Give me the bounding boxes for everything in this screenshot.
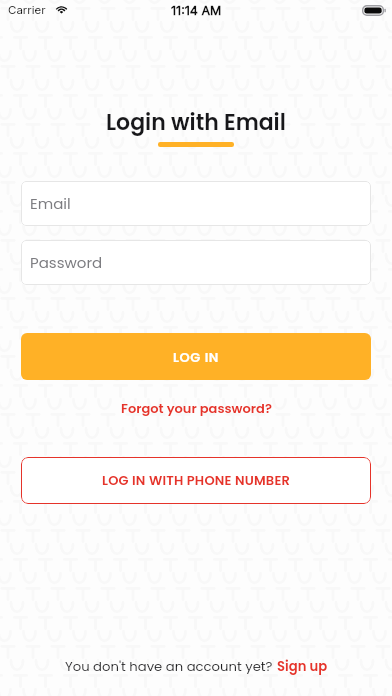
staticText: LOG IN [173,348,220,366]
button[interactable]: LOG IN [21,333,371,380]
staticText: Carrier [8,3,46,17]
button[interactable]: Email [21,181,371,226]
button[interactable]: Password [21,240,371,285]
staticText: Login with Email [106,107,286,138]
staticText: LOG IN WITH PHONE NUMBER [102,471,291,489]
staticText: Email [30,193,71,214]
other: Battery [362,5,386,16]
staticText: 11:14 AM [171,3,222,18]
staticText: Password [30,252,103,273]
staticText: You don't have an account yet? [65,657,277,675]
button[interactable]: Forgot your password? [113,395,280,421]
staticText: Sign up [277,657,328,675]
button[interactable]: Sign up [277,657,328,675]
button[interactable]: LOG IN WITH PHONE NUMBER [21,457,371,504]
staticText: Forgot your password? [121,399,272,417]
